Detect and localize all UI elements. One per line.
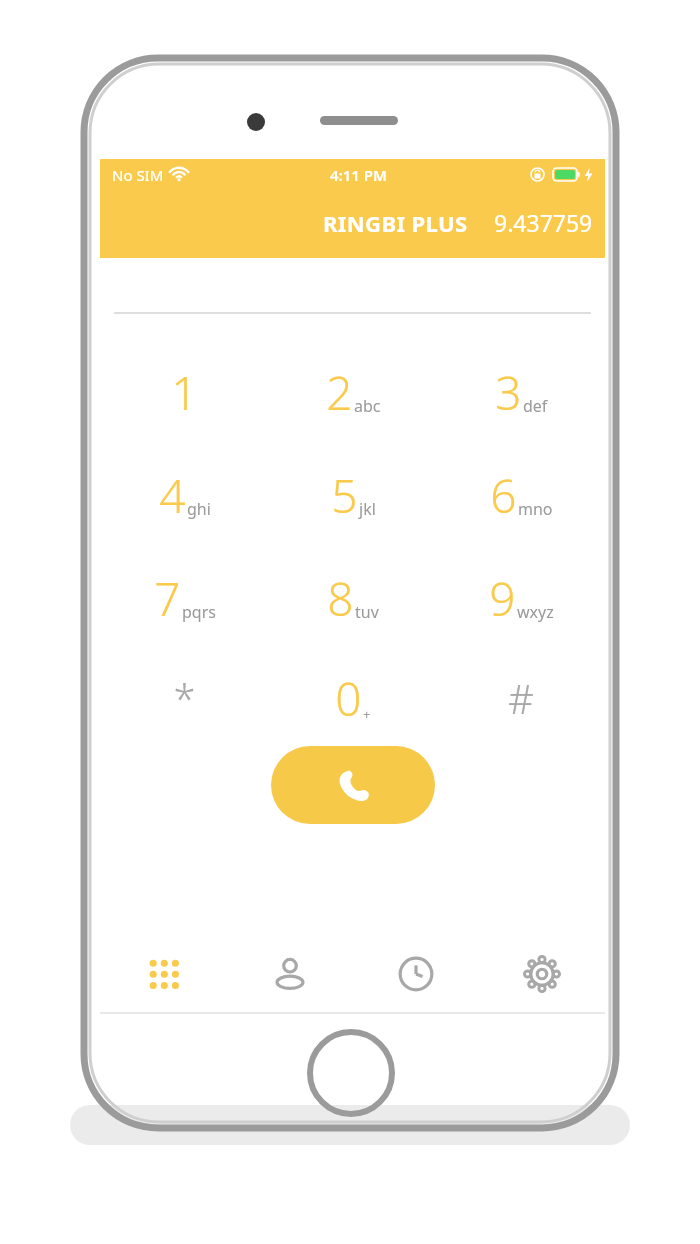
staticText: 3 — [495, 361, 522, 424]
button[interactable]: # — [437, 650, 605, 746]
staticText: abc — [354, 395, 381, 417]
staticText: 6 — [490, 464, 517, 527]
staticText: 2 — [326, 361, 353, 424]
button[interactable]: 6 — [437, 444, 605, 547]
button[interactable]: * — [100, 650, 269, 746]
button[interactable]: Contacts — [227, 936, 353, 1012]
staticText: 7 — [154, 567, 181, 630]
button[interactable]: 2 — [269, 341, 437, 444]
staticText: 1 — [171, 361, 198, 424]
button[interactable]: 5 — [269, 444, 437, 547]
staticText: def — [523, 395, 548, 417]
button[interactable]: 7 — [100, 547, 269, 650]
staticText: # — [508, 671, 534, 725]
staticText: 8 — [327, 567, 354, 630]
staticText: * — [173, 671, 196, 725]
staticText: pqrs — [182, 601, 216, 623]
button[interactable]: 4 — [100, 444, 269, 547]
button[interactable]: 8 — [269, 547, 437, 650]
staticText: ghi — [187, 498, 211, 520]
staticText: 5 — [331, 464, 358, 527]
staticText: 9 — [489, 567, 516, 630]
button[interactable]: Call — [271, 746, 435, 824]
staticText: + — [363, 705, 371, 723]
button[interactable]: Keypad — [100, 936, 227, 1012]
staticText: mno — [518, 498, 553, 520]
button[interactable]: 0 — [269, 650, 437, 746]
staticText: 9.437759 — [494, 207, 593, 238]
staticText: RINGBI PLUS — [323, 208, 468, 238]
staticText: No SIM — [112, 165, 164, 185]
button[interactable]: Settings — [479, 936, 605, 1012]
staticText: wxyz — [517, 601, 554, 623]
button[interactable]: Recents — [353, 936, 479, 1012]
staticText: 4:11 PM — [330, 165, 387, 185]
staticText: jkl — [359, 498, 376, 520]
staticText: 0 — [335, 667, 362, 730]
button[interactable]: 9 — [437, 547, 605, 650]
button[interactable]: 1 — [100, 341, 269, 444]
staticText: 4 — [159, 464, 186, 527]
staticText: tuv — [355, 601, 379, 623]
button[interactable]: 3 — [437, 341, 605, 444]
